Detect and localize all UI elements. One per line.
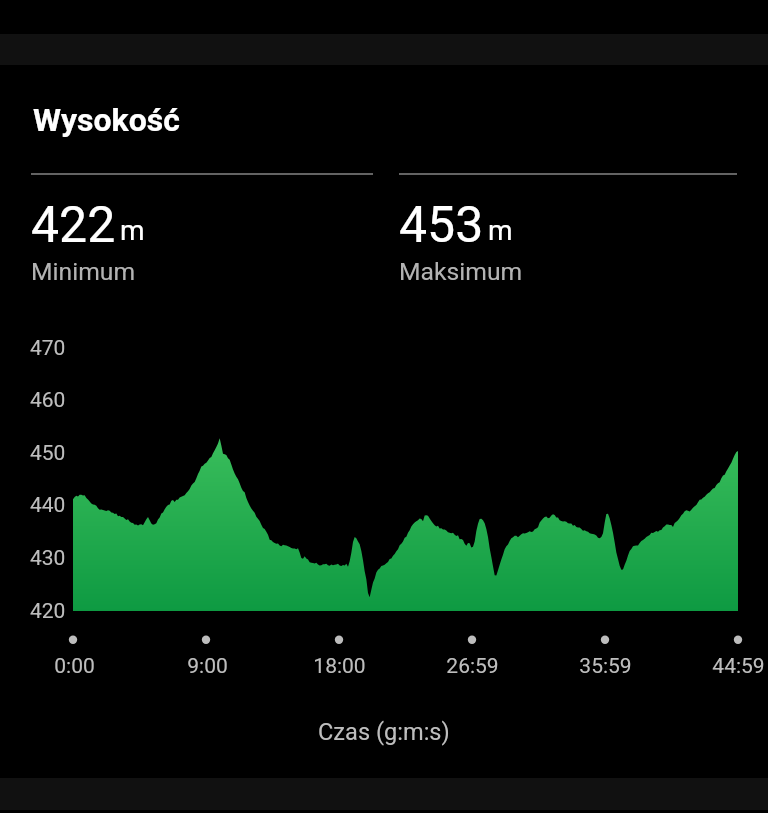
staticText: 26:59 — [446, 654, 499, 679]
button[interactable]: Wysokość — [0, 69, 768, 777]
staticText: 420 — [30, 599, 66, 624]
staticText: 470 — [30, 336, 66, 361]
staticText: 44:59 — [712, 654, 765, 679]
staticText: m — [488, 214, 513, 247]
staticText: 422 — [31, 196, 116, 255]
staticText: Minimum — [31, 257, 136, 286]
staticText: 453 — [399, 196, 484, 255]
staticText: m — [120, 214, 145, 247]
staticText: 18:00 — [313, 654, 366, 679]
staticText: 440 — [30, 493, 66, 518]
staticText: 460 — [30, 388, 66, 413]
button[interactable]: 422 — [31, 196, 149, 286]
staticText: Czas (g:m:s) — [318, 718, 450, 746]
staticText: 9:00 — [187, 654, 228, 679]
staticText: Maksimum — [399, 257, 523, 286]
staticText: Wysokość — [33, 101, 180, 139]
staticText: 35:59 — [579, 654, 632, 679]
button[interactable]: Wykres wysokości w czasie — [0, 330, 768, 650]
staticText: 450 — [30, 441, 66, 466]
staticText: 430 — [30, 546, 66, 571]
staticText: 0:00 — [54, 654, 95, 679]
button[interactable]: 453 — [399, 196, 523, 286]
